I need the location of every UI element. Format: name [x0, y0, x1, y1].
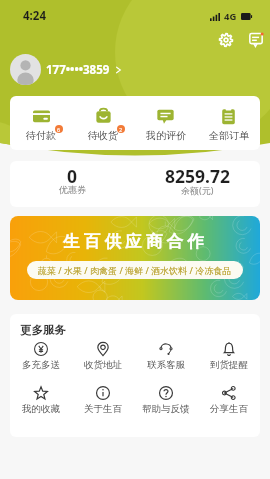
staticText: 2 [119, 126, 123, 133]
button[interactable]: 0 [10, 161, 135, 207]
staticText: 余额(元) [181, 184, 214, 196]
button[interactable]: 待付款 [10, 96, 72, 150]
button[interactable]: 生百供应商合作 [10, 216, 260, 300]
button[interactable]: 177••••3859 [10, 48, 260, 91]
button[interactable]: 到货提醒 [197, 342, 260, 371]
staticText: 到货提醒 [210, 359, 248, 371]
staticText: 4:24 [23, 8, 46, 24]
button[interactable]: Messages [245, 32, 267, 48]
button[interactable]: 分享生百 [197, 386, 260, 415]
button[interactable]: 多充多送 [10, 342, 72, 371]
staticText: 联系客服 [147, 359, 185, 371]
button[interactable]: 关于生百 [72, 386, 134, 415]
staticText: 蔬菜 / 水果 / 肉禽蛋 / 海鲜 / 酒水饮料 / 冷冻食品 [38, 264, 232, 276]
button[interactable]: 联系客服 [134, 342, 197, 371]
staticText: 6 [57, 126, 61, 133]
staticText: 全部订单 [209, 129, 249, 142]
staticText: 177••••3859 [46, 62, 110, 78]
staticText: 帮助与反馈 [142, 403, 190, 415]
staticText: 8259.72 [165, 164, 230, 188]
button[interactable]: 收货地址 [72, 342, 134, 371]
button[interactable]: 全部订单 [197, 96, 260, 150]
button[interactable]: Settings [215, 32, 237, 48]
staticText: 我的评价 [146, 129, 186, 142]
staticText: 待收货 [88, 129, 118, 142]
staticText: 0 [67, 164, 78, 188]
staticText: 4G [224, 10, 237, 23]
staticText: 我的收藏 [22, 403, 60, 415]
staticText: 分享生百 [210, 403, 248, 415]
button[interactable]: 我的评价 [134, 96, 197, 150]
button[interactable]: 帮助与反馈 [134, 386, 197, 415]
button[interactable]: 我的收藏 [10, 386, 72, 415]
staticText: 收货地址 [84, 359, 122, 371]
button[interactable]: 8259.72 [135, 161, 260, 207]
staticText: 更多服务 [20, 323, 66, 337]
button[interactable]: 待收货 [72, 96, 134, 150]
staticText: 优惠券 [59, 184, 86, 195]
staticText: 待付款 [26, 129, 56, 142]
staticText: 关于生百 [84, 403, 122, 415]
staticText: 生百供应商合作 [63, 231, 208, 252]
staticText: 多充多送 [22, 359, 60, 371]
